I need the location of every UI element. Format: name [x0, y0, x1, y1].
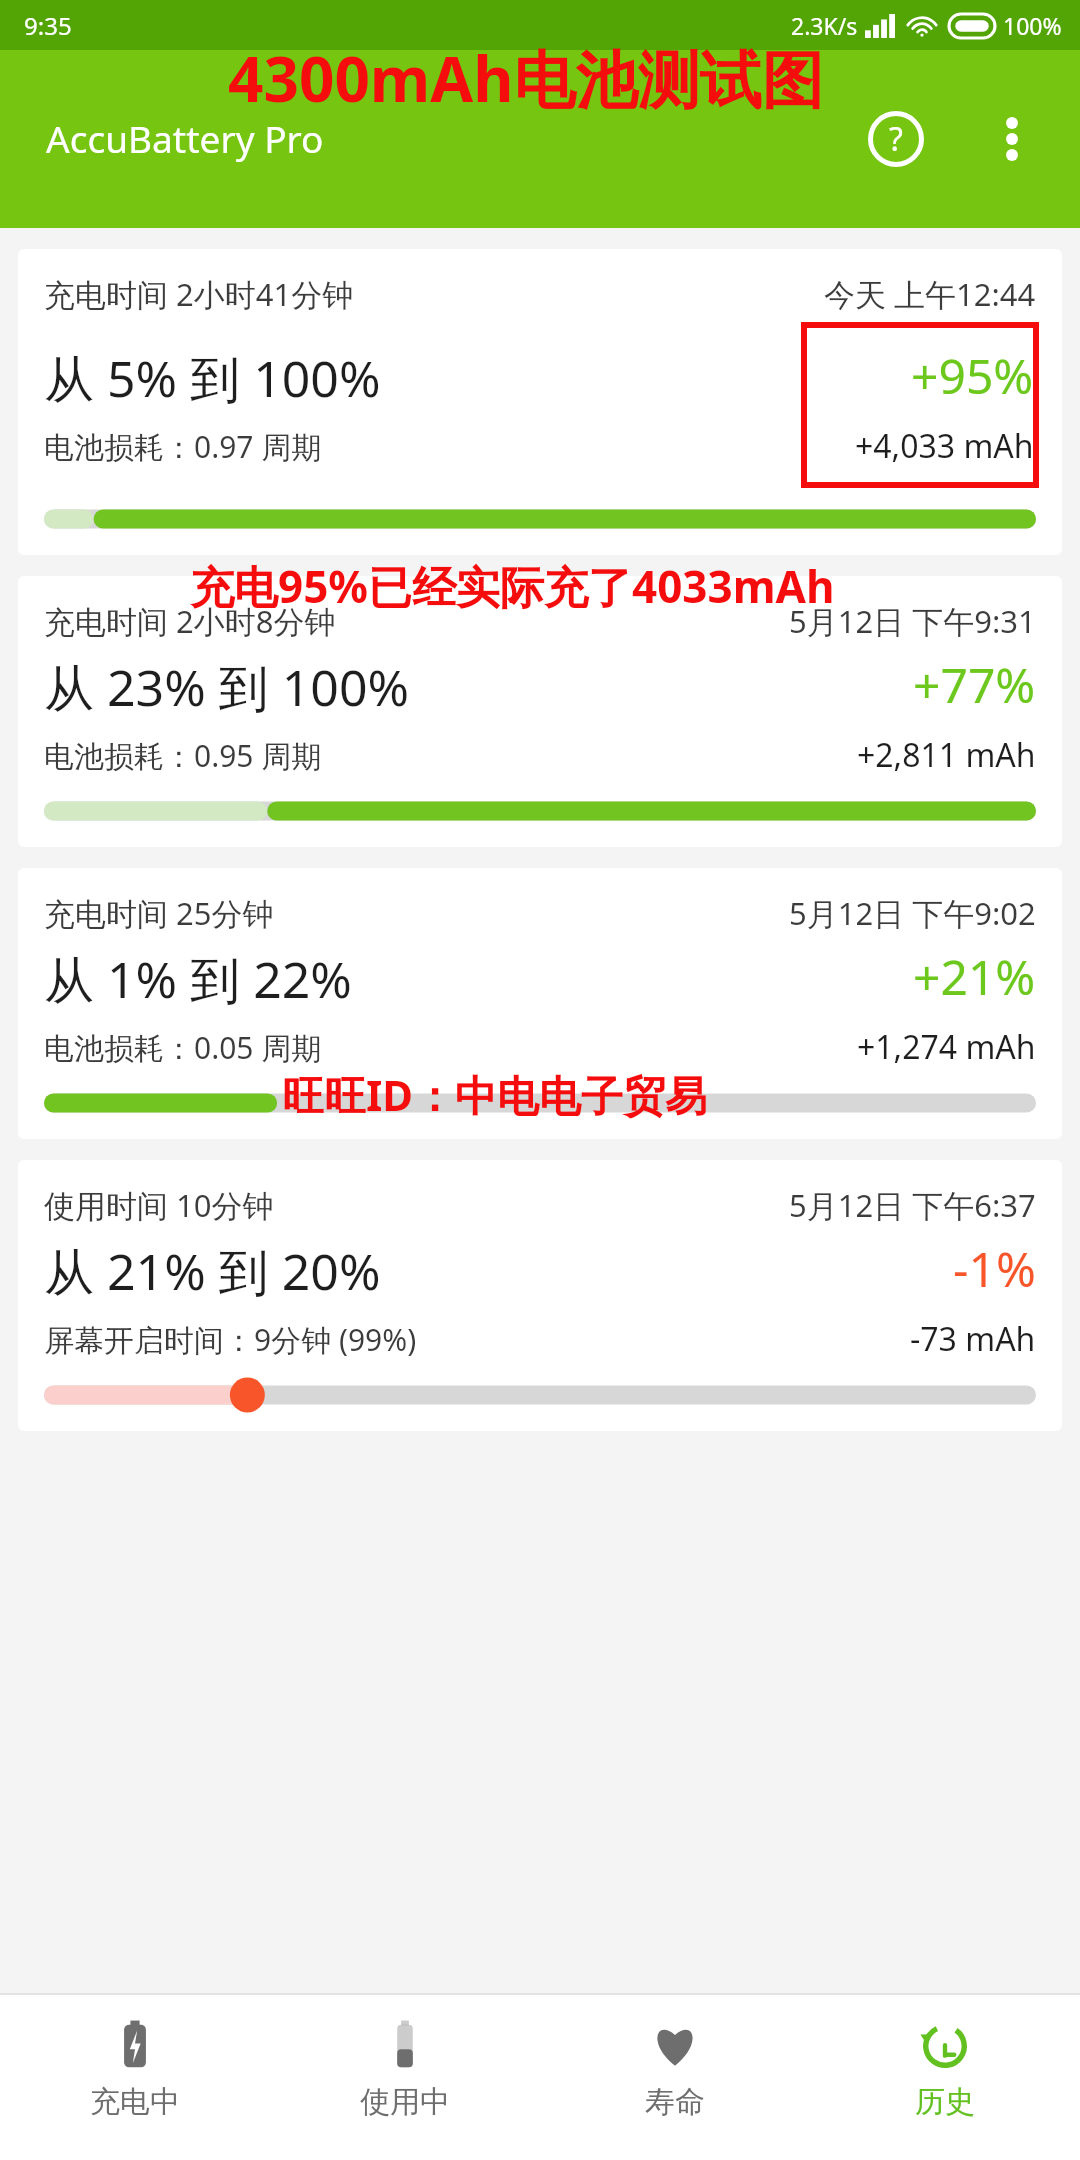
staticText: 从 5% 到 100%	[44, 344, 381, 412]
staticText: +77%	[913, 652, 1036, 717]
staticText: 充电95%已经实际充了4033mAh	[190, 556, 835, 616]
button[interactable]: 历史	[810, 1995, 1080, 2160]
staticText: 充电时间 2小时8分钟	[44, 600, 336, 642]
staticText: 充电中	[90, 2083, 180, 2121]
staticText: 充电时间 2小时41分钟	[44, 273, 354, 315]
staticText: +21%	[913, 944, 1036, 1009]
button[interactable]: 充电时间 2小时8分钟	[18, 576, 1062, 847]
button[interactable]: 使用时间 10分钟	[18, 1160, 1062, 1431]
staticText: -73 mAh	[910, 1317, 1036, 1361]
staticText: 5月12日 下午9:02	[789, 892, 1036, 934]
staticText: 历史	[915, 2083, 975, 2121]
staticText: 5月12日 下午6:37	[789, 1184, 1036, 1226]
staticText: +95%	[911, 343, 1034, 408]
staticText: 充电时间 25分钟	[44, 892, 274, 934]
button[interactable]: More options	[970, 97, 1054, 181]
staticText: 从 23% 到 100%	[44, 653, 410, 721]
staticText: 旺旺ID：中电电子贸易	[282, 1066, 708, 1123]
button[interactable]: 使用中	[270, 1995, 540, 2160]
staticText: 使用时间 10分钟	[44, 1184, 274, 1226]
staticText: 9:35	[24, 9, 72, 42]
staticText: ?	[889, 117, 903, 161]
staticText: +2,811 mAh	[857, 733, 1036, 777]
button[interactable]: 寿命	[540, 1995, 810, 2160]
staticText: 电池损耗：0.95 周期	[44, 735, 322, 776]
staticText: 电池损耗：0.97 周期	[44, 426, 322, 467]
staticText: AccuBattery Pro	[46, 113, 324, 163]
staticText: -1%	[953, 1236, 1036, 1301]
staticText: 电池损耗：0.05 周期	[44, 1027, 322, 1068]
staticText: 从 1% 到 22%	[44, 945, 352, 1013]
staticText: 100%	[1003, 10, 1062, 41]
staticText: 今天 上午12:44	[824, 273, 1036, 315]
button[interactable]: 充电时间 2小时41分钟	[18, 249, 1062, 555]
staticText: +4,033 mAh	[855, 424, 1034, 468]
staticText: 2.3K/s	[791, 10, 858, 41]
staticText: 使用中	[360, 2083, 450, 2121]
button[interactable]: Help	[854, 97, 938, 181]
staticText: 屏幕开启时间：9分钟 (99%)	[44, 1319, 417, 1360]
staticText: 4300mAh电池测试图	[228, 36, 824, 121]
button[interactable]: 充电中	[0, 1995, 270, 2160]
staticText: +1,274 mAh	[857, 1025, 1036, 1069]
button[interactable]: 充电时间 25分钟	[18, 868, 1062, 1139]
staticText: 寿命	[645, 2083, 705, 2121]
staticText: 从 21% 到 20%	[44, 1237, 381, 1305]
staticText: 5月12日 下午9:31	[789, 600, 1036, 642]
